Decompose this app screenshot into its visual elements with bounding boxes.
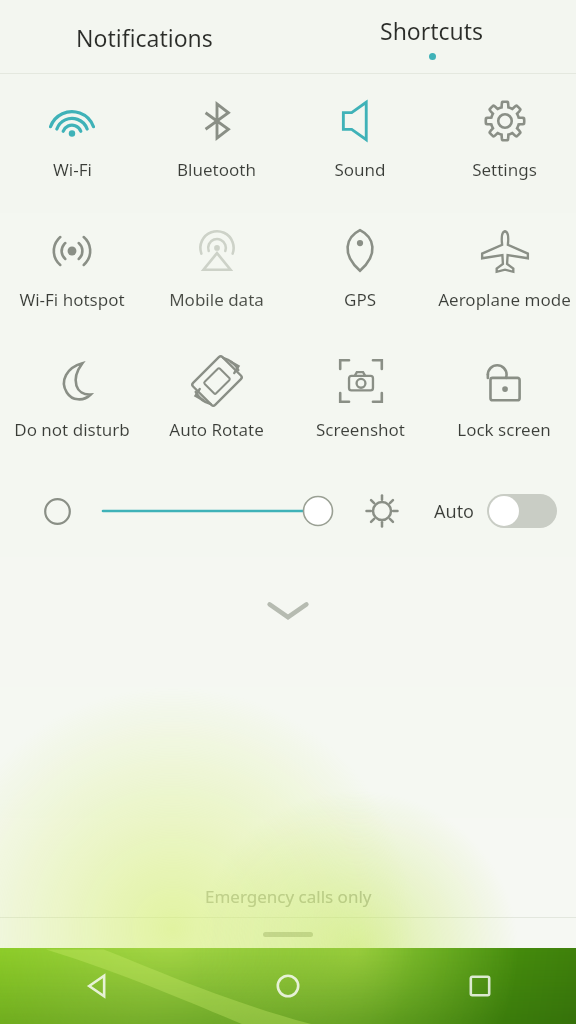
button[interactable]: Shortcuts: [288, 0, 576, 74]
button[interactable]: Expand: [260, 586, 316, 634]
staticText: Notifications: [76, 22, 213, 53]
staticText: Sound: [334, 158, 386, 181]
button[interactable]: Low brightness: [37, 491, 77, 531]
button[interactable]: Aeroplane mode: [432, 205, 576, 335]
button[interactable]: Brightness slider: [95, 487, 340, 535]
staticText: Bluetooth: [177, 158, 256, 181]
staticText: Settings: [472, 158, 537, 181]
button[interactable]: Back: [0, 948, 192, 1024]
button[interactable]: Auto Rotate: [144, 335, 288, 465]
staticText: Screenshot: [316, 418, 405, 441]
staticText: Auto Rotate: [169, 418, 264, 441]
staticText: Wi-Fi hotspot: [19, 288, 125, 311]
staticText: Wi-Fi: [53, 158, 92, 181]
button[interactable]: Sound: [288, 75, 432, 205]
staticText: Auto: [434, 499, 475, 524]
button[interactable]: Lock screen: [432, 335, 576, 465]
staticText: Emergency calls only: [205, 885, 372, 908]
staticText: Lock screen: [457, 418, 551, 441]
staticText: Shortcuts: [380, 15, 484, 46]
button[interactable]: Notifications: [0, 0, 288, 74]
staticText: Do not disturb: [14, 418, 130, 441]
button[interactable]: Mobile data: [144, 205, 288, 335]
button[interactable]: Auto: [434, 494, 557, 528]
button[interactable]: Wi-Fi: [0, 75, 144, 205]
button[interactable]: Recents: [384, 948, 576, 1024]
staticText: GPS: [344, 288, 376, 311]
button[interactable]: Wi-Fi hotspot: [0, 205, 144, 335]
button[interactable]: Bluetooth: [144, 75, 288, 205]
button[interactable]: Screenshot: [288, 335, 432, 465]
button[interactable]: Do not disturb: [0, 335, 144, 465]
button[interactable]: GPS: [288, 205, 432, 335]
staticText: Aeroplane mode: [438, 288, 571, 311]
button[interactable]: High brightness: [358, 487, 406, 535]
button[interactable]: Home: [192, 948, 384, 1024]
button[interactable]: Settings: [432, 75, 576, 205]
staticText: Mobile data: [169, 288, 264, 311]
